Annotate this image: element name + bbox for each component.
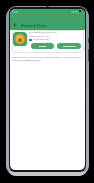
button[interactable]: TPH Coins (Trail_Fast_ML) [12,30,84,53]
staticText: to the Get Reward Game. [12,58,42,61]
staticText: SHARE [39,45,47,48]
staticText: Please Note: If you click on Reward butt… [12,55,82,58]
staticText: Reward Chips (1.ML) [29,35,50,38]
button[interactable]: EARN CHIPS [57,43,81,49]
staticText: TPH Coins (Trail_Fast_ML) [29,31,57,34]
staticText: In Review Chips [33,38,50,41]
staticText: Reward Chips [21,23,47,28]
button[interactable]: SHARE [31,43,54,49]
staticText: EARN CHIPS [63,45,76,48]
button[interactable] [13,23,17,27]
